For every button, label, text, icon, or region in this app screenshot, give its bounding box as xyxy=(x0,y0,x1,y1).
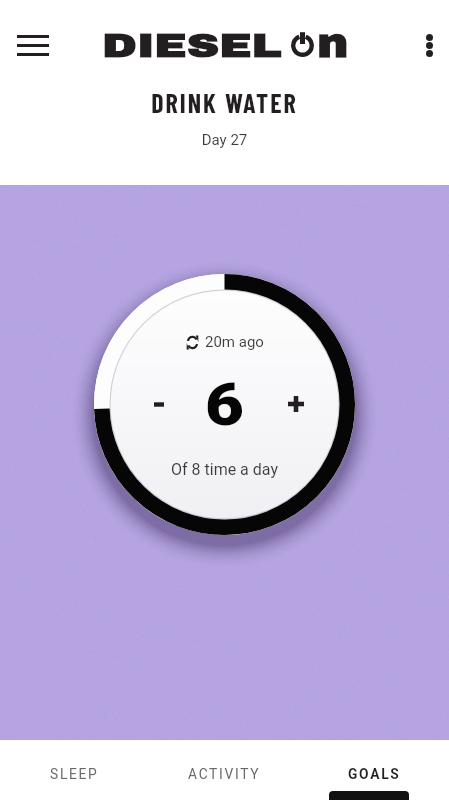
button[interactable]: Decrease xyxy=(129,374,189,434)
staticText: Day 27 xyxy=(0,131,449,149)
button[interactable]: Increase xyxy=(266,374,326,434)
button[interactable]: Menu xyxy=(8,21,57,69)
button[interactable]: ACTIVITY xyxy=(149,758,299,790)
button[interactable]: More options xyxy=(405,21,449,69)
staticText: GOALS xyxy=(348,766,401,782)
staticText: Of 8 time a day xyxy=(171,460,278,479)
button[interactable]: SLEEP xyxy=(0,758,149,790)
button[interactable]: GOALS xyxy=(299,758,449,790)
staticText: 6 xyxy=(205,369,244,439)
staticText: ACTIVITY xyxy=(188,766,261,782)
staticText: SLEEP xyxy=(50,766,99,782)
staticText: DIESEL xyxy=(102,28,281,64)
staticText: DRINK WATER xyxy=(0,87,449,118)
staticText: 20m ago xyxy=(205,333,264,351)
staticText: n xyxy=(317,19,349,66)
